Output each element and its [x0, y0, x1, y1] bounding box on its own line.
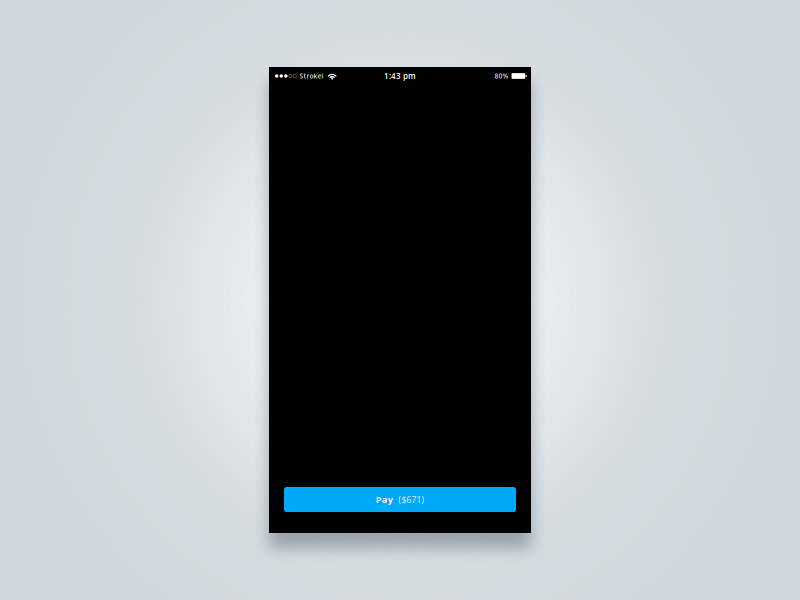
staticText: ($671) [398, 493, 424, 506]
staticText: Strokei [299, 72, 323, 80]
staticText: 80% [494, 72, 508, 80]
staticText: 1:43 pm [384, 71, 416, 81]
staticText: Pay [376, 493, 393, 506]
button[interactable]: Pay [284, 487, 516, 512]
